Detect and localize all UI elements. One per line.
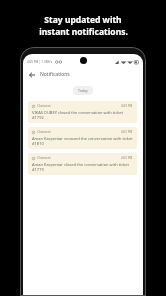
staticText: 4:02 PM xyxy=(121,130,133,134)
staticText: VIKAS DUBEY closed the conversation with… xyxy=(32,110,133,120)
button[interactable]: Today xyxy=(73,86,93,95)
staticText: Chatwoot xyxy=(37,156,51,160)
button[interactable]: Chatwoot xyxy=(28,101,137,123)
staticText: instant notifications. xyxy=(39,26,128,38)
staticText: 4:02 PM xyxy=(121,156,133,160)
staticText: 4:03 PM xyxy=(121,104,133,108)
staticText: Stay updated with xyxy=(44,14,122,26)
button[interactable]: Chatwoot xyxy=(28,153,137,175)
staticText: Today xyxy=(78,88,88,93)
staticText: Aman Karpentar closed the conversation w… xyxy=(32,162,133,172)
staticText: Notifications xyxy=(40,71,70,78)
staticText: Chatwoot xyxy=(37,130,51,134)
button[interactable]: Notifications xyxy=(23,67,143,82)
button[interactable]: Chatwoot xyxy=(28,127,137,149)
staticText: 4:05 PM | 1.3KB/s xyxy=(27,60,53,64)
staticText: Chatwoot xyxy=(37,104,51,108)
staticText: Aman Karpentar snoozed the conversation … xyxy=(32,136,133,146)
